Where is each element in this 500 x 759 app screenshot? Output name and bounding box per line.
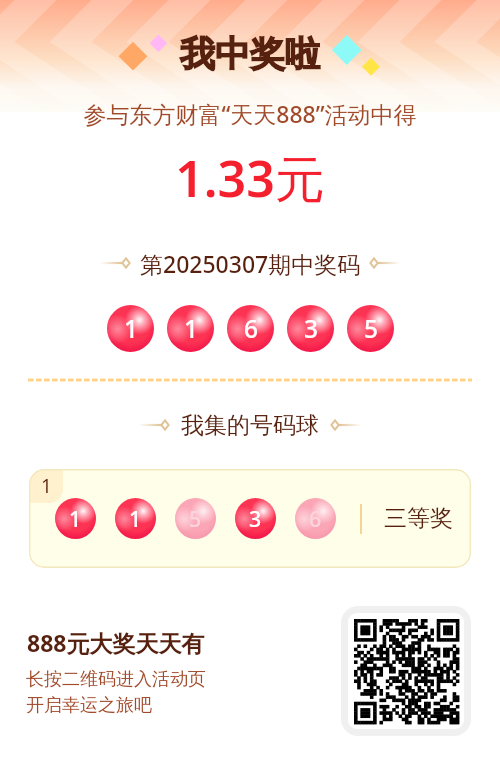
staticText: 1 (129, 504, 142, 533)
staticText: 长按二维码进入活动页 (26, 668, 206, 691)
staticText: 三等奖 (384, 504, 453, 533)
staticText: 3 (249, 504, 262, 533)
button[interactable]: 1 (29, 469, 471, 568)
button[interactable]: QR code (341, 606, 471, 736)
staticText: 3 (304, 312, 318, 345)
staticText: 我中奖啦 (0, 32, 500, 76)
staticText: 5 (364, 312, 378, 345)
staticText: 参与东方财富“天天888”活动中得 (0, 98, 500, 129)
staticText: 1 (69, 504, 82, 533)
staticText: 开启幸运之旅吧 (26, 694, 152, 717)
staticText: 6 (309, 504, 322, 533)
staticText: 1 (124, 312, 138, 345)
staticText: 888元大奖天天有 (27, 627, 205, 658)
staticText: 1 (184, 312, 198, 345)
staticText: 1.33元 (0, 144, 500, 212)
staticText: 第20250307期中奖码 (140, 248, 361, 278)
staticText: 6 (244, 312, 258, 345)
staticText: 5 (189, 504, 202, 533)
staticText: 我集的号码球 (181, 411, 319, 440)
staticText: 1 (41, 473, 52, 499)
